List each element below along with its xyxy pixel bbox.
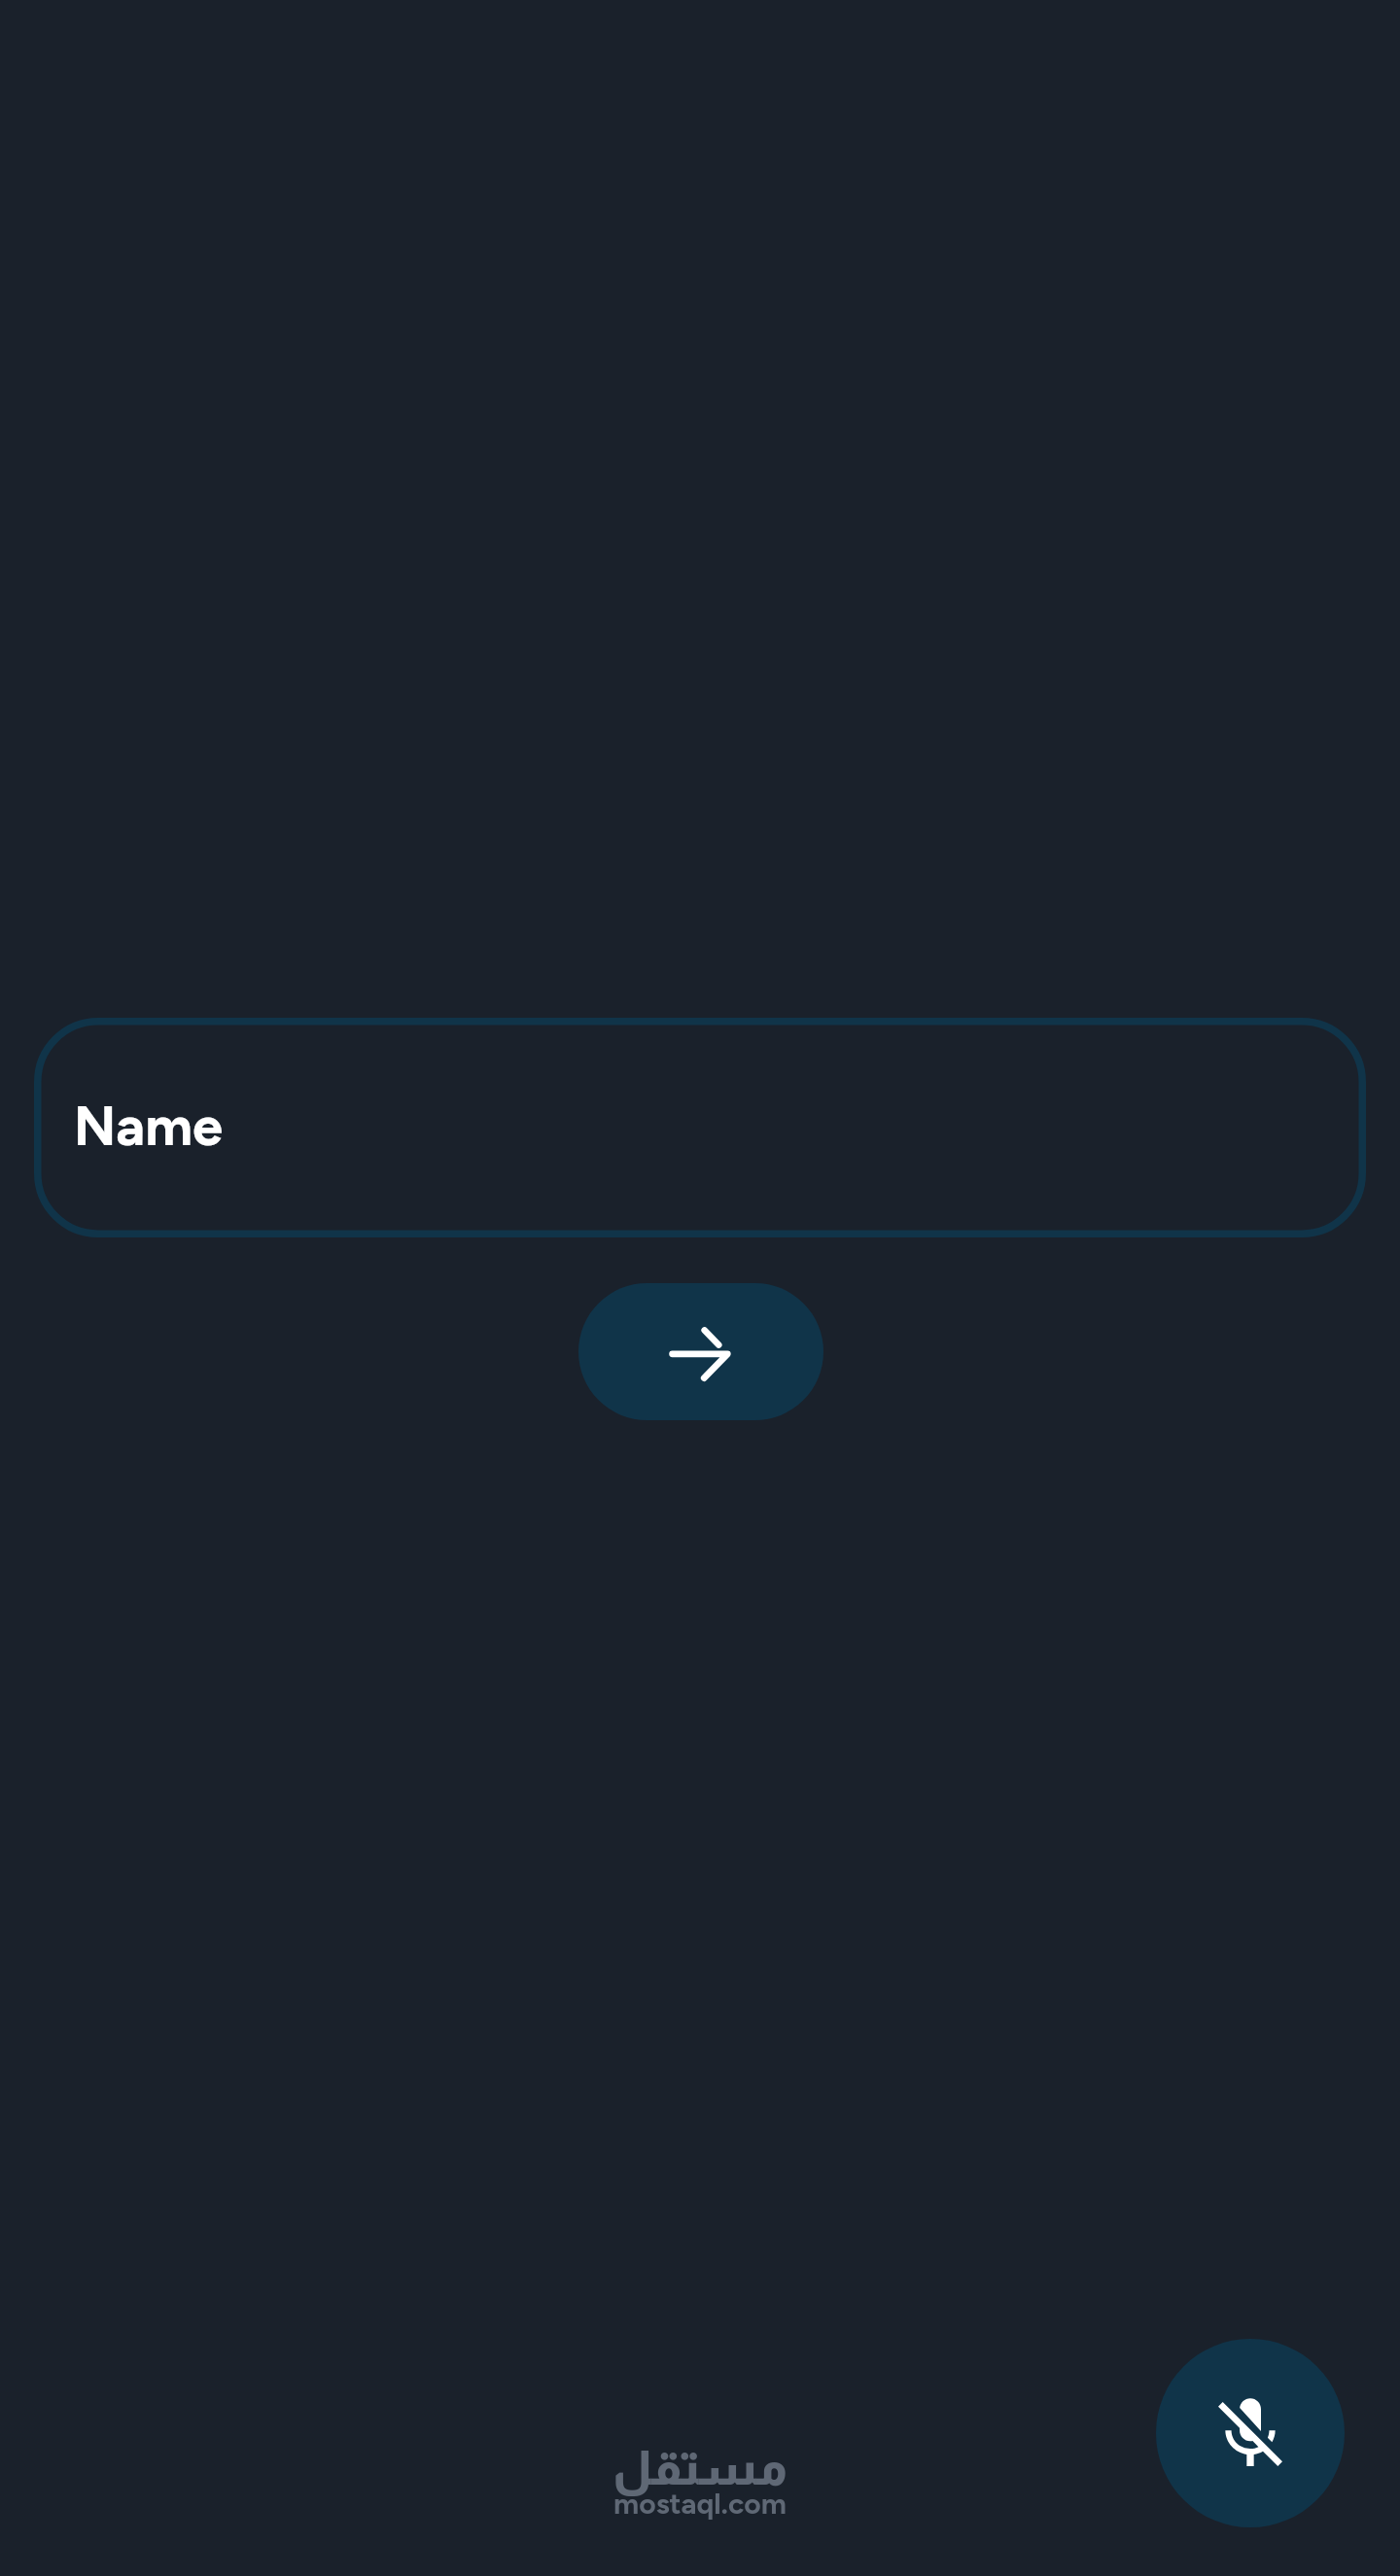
button[interactable]: Continue	[578, 1283, 823, 1420]
staticText: مستقل	[612, 2442, 787, 2495]
button[interactable]: Name	[34, 1018, 1366, 1237]
staticText: Name	[74, 1094, 223, 1159]
staticText: mostaql.com	[613, 2486, 787, 2521]
button[interactable]: Microphone off	[1156, 2339, 1345, 2527]
